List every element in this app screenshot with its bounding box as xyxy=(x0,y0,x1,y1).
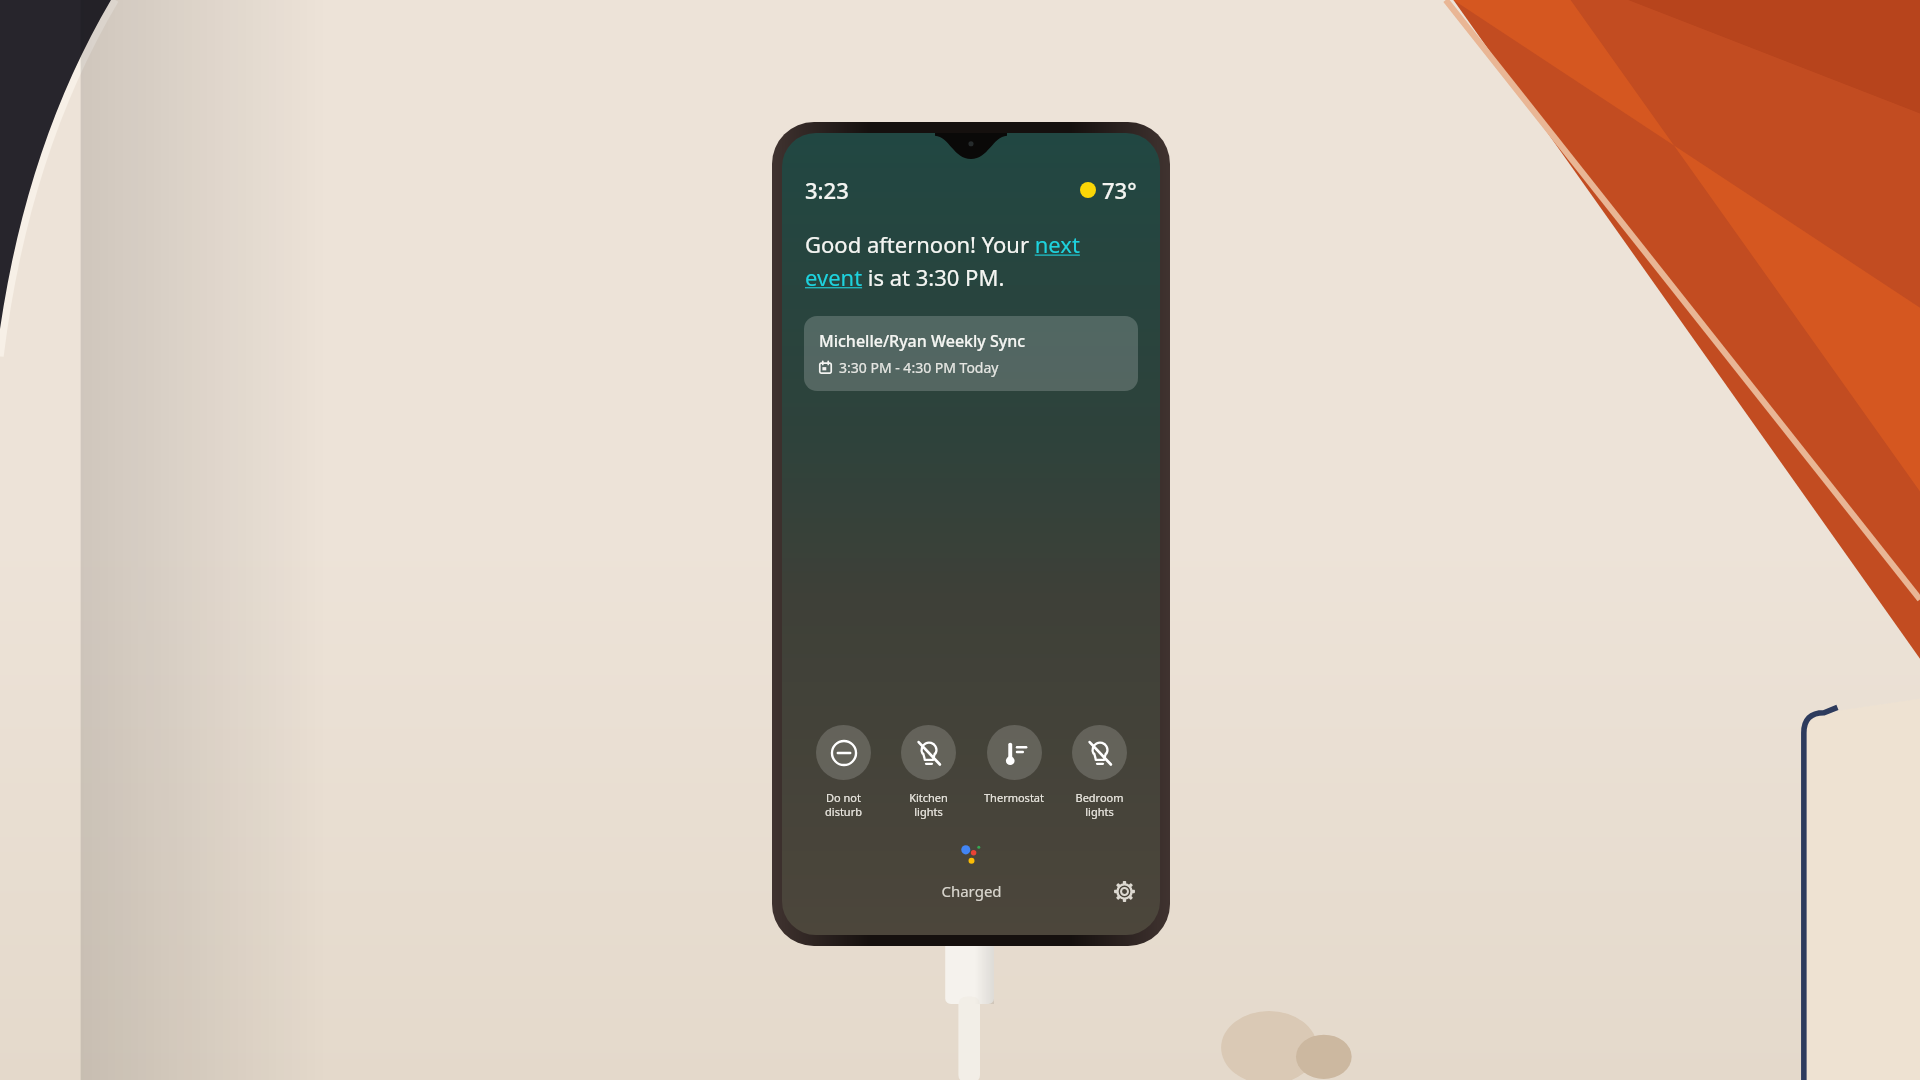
other: Do not disturb xyxy=(816,725,871,780)
other: Kitchen lights xyxy=(901,725,956,780)
staticText: Thermostat xyxy=(984,790,1044,805)
button[interactable]: Bedroom lights xyxy=(1061,723,1137,821)
button[interactable]: Kitchen lights xyxy=(890,723,966,821)
button[interactable]: Thermostat xyxy=(976,723,1052,807)
staticText: Good afternoon! Your next event is at 3:… xyxy=(805,229,1137,292)
button[interactable]: Settings xyxy=(1108,875,1140,907)
button[interactable]: Google Assistant xyxy=(782,841,1160,867)
staticText: 73° xyxy=(1102,175,1137,205)
staticText: Do not disturb xyxy=(825,790,862,819)
staticText: Kitchen lights xyxy=(909,790,948,819)
staticText: Michelle/Ryan Weekly Sync xyxy=(819,330,1026,352)
staticText: Charged xyxy=(941,881,1002,901)
other: Bedroom lights xyxy=(1072,725,1127,780)
button[interactable]: Do not disturb xyxy=(805,723,881,821)
staticText: 3:23 xyxy=(805,175,849,205)
button[interactable]: Michelle/Ryan Weekly Sync xyxy=(804,316,1138,391)
button[interactable]: Good afternoon! Your next event is at 3:… xyxy=(805,229,1137,292)
staticText: Bedroom lights xyxy=(1075,790,1124,819)
other: Thermostat xyxy=(987,725,1042,780)
staticText: 3:30 PM - 4:30 PM Today xyxy=(839,358,999,377)
